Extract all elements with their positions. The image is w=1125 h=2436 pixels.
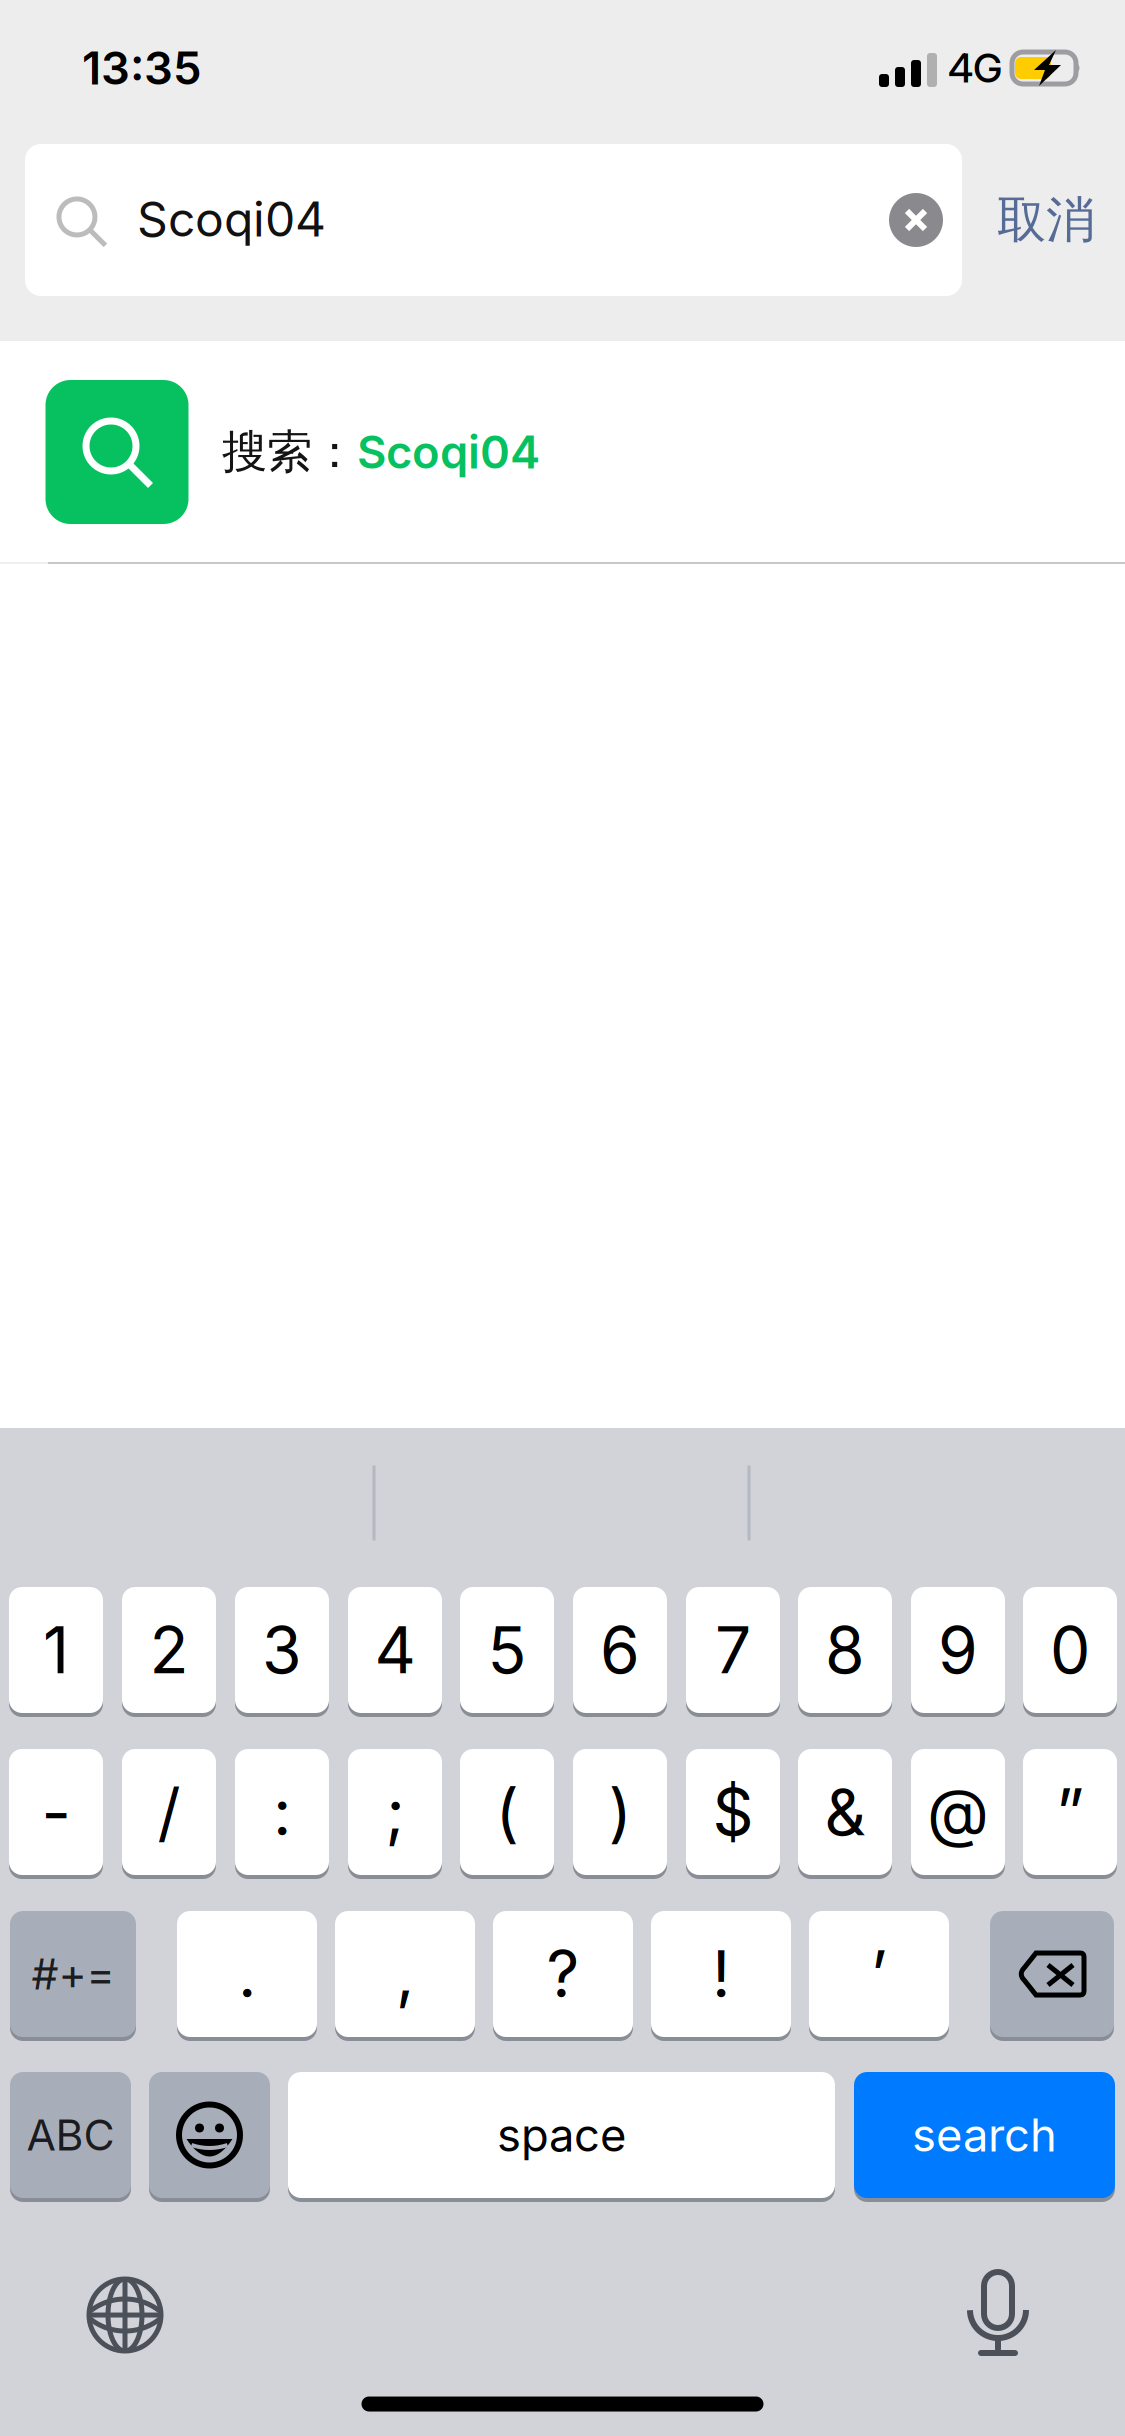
- button[interactable]: 5: [460, 1583, 554, 1717]
- staticText: 7: [715, 1611, 751, 1689]
- staticText: space: [497, 2108, 626, 2162]
- staticText: 5: [487, 1611, 526, 1689]
- staticText: 3: [262, 1611, 302, 1689]
- button[interactable]: -: [9, 1745, 103, 1879]
- staticText: 9: [938, 1611, 978, 1689]
- staticText: ,: [396, 1935, 414, 2013]
- button[interactable]: search: [854, 2068, 1115, 2202]
- button[interactable]: ’: [809, 1907, 949, 2041]
- button[interactable]: Clear text: [866, 170, 966, 270]
- staticText: 0: [1050, 1611, 1090, 1689]
- button[interactable]: .: [177, 1907, 317, 2041]
- button[interactable]: ?: [493, 1907, 633, 2041]
- button[interactable]: ): [573, 1745, 667, 1879]
- button[interactable]: (: [460, 1745, 554, 1879]
- button[interactable]: 3: [235, 1583, 329, 1717]
- button[interactable]: 0: [1023, 1583, 1117, 1717]
- staticText: /: [157, 1773, 180, 1851]
- staticText: ?: [546, 1935, 579, 2013]
- staticText: 1: [43, 1611, 69, 1689]
- staticText: ;: [385, 1773, 404, 1851]
- button[interactable]: 7: [686, 1583, 780, 1717]
- button[interactable]: Emoji: [149, 2068, 270, 2202]
- button[interactable]: 6: [573, 1583, 667, 1717]
- button[interactable]: 搜索：: [0, 341, 1125, 563]
- staticText: ): [608, 1773, 631, 1851]
- button[interactable]: :: [235, 1745, 329, 1879]
- staticText: :: [273, 1773, 291, 1851]
- staticText: 2: [149, 1611, 188, 1689]
- staticText: 取消: [997, 189, 1095, 251]
- button[interactable]: @: [911, 1745, 1005, 1879]
- button[interactable]: 1: [9, 1583, 103, 1717]
- staticText: 搜索：: [222, 423, 357, 480]
- button[interactable]: Next keyboard: [65, 2255, 185, 2375]
- staticText: #+=: [31, 1948, 114, 2000]
- staticText: Scoqi04: [137, 190, 326, 248]
- staticText: 13:35: [82, 41, 202, 95]
- staticText: ’: [870, 1935, 887, 2013]
- button[interactable]: 9: [911, 1583, 1005, 1717]
- staticText: @: [927, 1773, 989, 1851]
- staticText: !: [712, 1935, 730, 2013]
- button[interactable]: Delete: [990, 1907, 1114, 2041]
- button[interactable]: &: [798, 1745, 892, 1879]
- staticText: 4G: [948, 44, 1002, 92]
- staticText: Scoqi04: [357, 425, 540, 479]
- staticText: 4: [374, 1611, 415, 1689]
- button[interactable]: 8: [798, 1583, 892, 1717]
- button[interactable]: ;: [348, 1745, 442, 1879]
- button[interactable]: 4: [348, 1583, 442, 1717]
- staticText: -: [41, 1773, 70, 1851]
- button[interactable]: ,: [335, 1907, 475, 2041]
- staticText: ABC: [26, 2109, 114, 2161]
- staticText: search: [912, 2108, 1057, 2162]
- staticText: ”: [1056, 1773, 1084, 1851]
- staticText: (: [495, 1773, 518, 1851]
- button[interactable]: $: [686, 1745, 780, 1879]
- button[interactable]: ABC: [10, 2068, 131, 2202]
- staticText: 6: [600, 1611, 640, 1689]
- button[interactable]: space: [288, 2068, 835, 2202]
- button[interactable]: ”: [1023, 1745, 1117, 1879]
- button[interactable]: #+=: [10, 1907, 136, 2041]
- button[interactable]: 2: [122, 1583, 216, 1717]
- staticText: 8: [825, 1611, 865, 1689]
- button[interactable]: 取消: [978, 160, 1113, 280]
- button[interactable]: /: [122, 1745, 216, 1879]
- staticText: &: [824, 1773, 865, 1851]
- staticText: .: [238, 1935, 256, 2013]
- button[interactable]: !: [651, 1907, 791, 2041]
- staticText: $: [712, 1773, 753, 1851]
- button[interactable]: Dictation: [968, 2270, 1028, 2370]
